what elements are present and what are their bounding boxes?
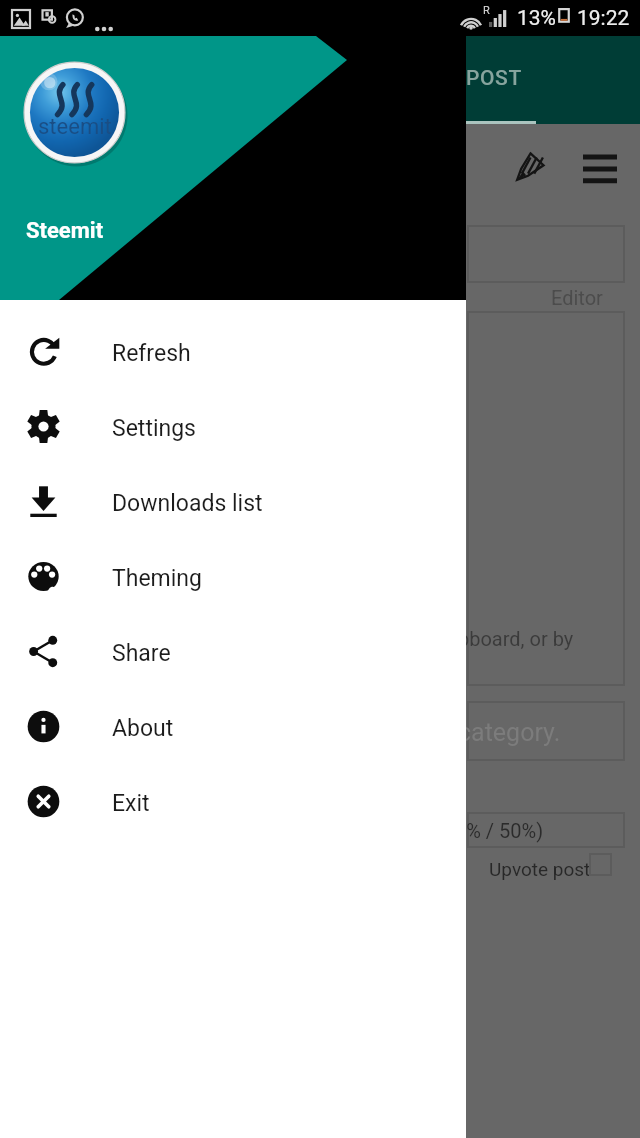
staticText: Refresh [112,340,191,367]
staticText: About [112,715,174,742]
staticText: 0% / 50%) [455,819,544,842]
button[interactable]: Refresh [0,314,466,389]
staticText: Steemit [26,218,104,244]
button[interactable]: Exit [0,764,466,839]
staticText: Editor [551,286,603,309]
staticText: Theming [112,565,202,592]
staticText: steemit [38,114,112,140]
button[interactable]: Theming [0,539,466,614]
button[interactable]: About [0,689,466,764]
staticText: POST [466,66,522,91]
button[interactable]: steemit [0,36,466,300]
staticText: Exit [112,790,150,817]
staticText: pboard, or by [458,627,574,650]
button[interactable]: Downloads list [0,464,466,539]
button[interactable]: Edit post [505,143,555,193]
staticText: 13% [517,6,556,31]
button[interactable]: Settings [0,389,466,464]
button[interactable]: Menu [578,144,622,188]
staticText: Downloads list [112,490,263,517]
staticText: Settings [112,415,196,442]
staticText: category. [458,718,561,747]
staticText: Upvote post [489,858,591,880]
staticText: 19:22 [577,6,630,31]
button[interactable]: Upvote post checkbox [590,854,611,875]
staticText: R [483,4,490,17]
staticText: Share [112,640,171,667]
button[interactable]: POST [466,36,536,124]
button[interactable]: Share [0,614,466,689]
